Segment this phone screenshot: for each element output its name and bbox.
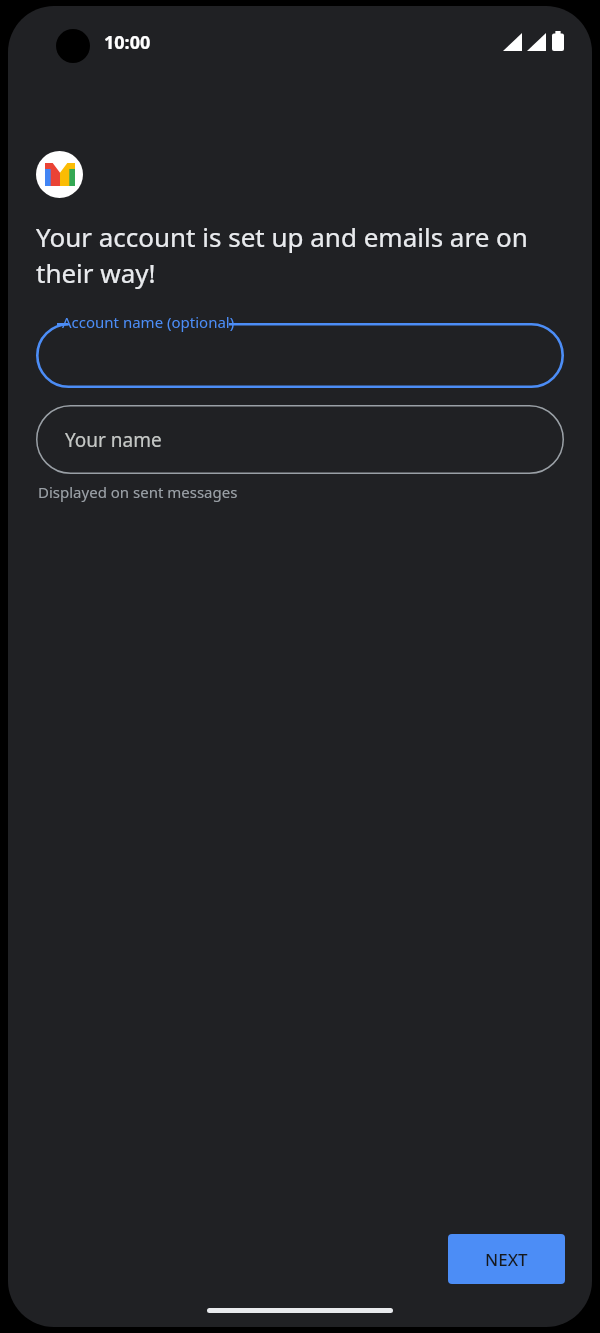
staticText: Account name (optional) xyxy=(62,312,235,332)
staticText: Displayed on sent messages xyxy=(38,482,238,502)
button[interactable]: Your name xyxy=(36,405,564,474)
staticText: Your account is set up and emails are on… xyxy=(36,219,564,291)
staticText: 10:00 xyxy=(104,30,151,55)
button[interactable]: NEXT xyxy=(448,1234,565,1284)
other: Gmail xyxy=(36,151,83,198)
staticText: NEXT xyxy=(485,1248,528,1271)
button[interactable]: Account name (optional) xyxy=(36,312,564,388)
staticText: Your name xyxy=(65,427,162,453)
